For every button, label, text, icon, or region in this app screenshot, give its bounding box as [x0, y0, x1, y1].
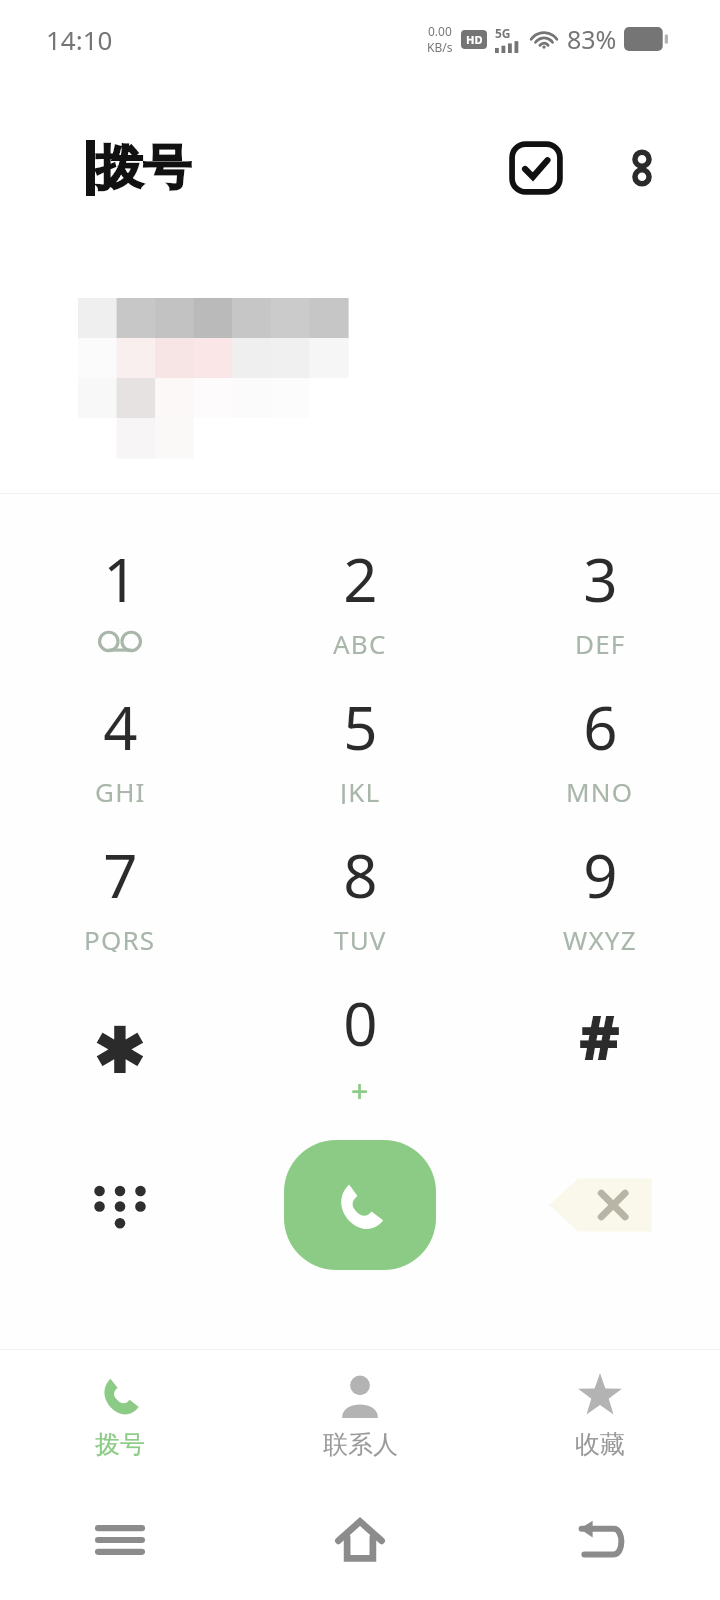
button[interactable]: Delete	[480, 1120, 720, 1290]
staticText: ABC	[333, 626, 387, 656]
staticText: 拨号	[95, 1429, 145, 1460]
staticText: MNO	[566, 774, 634, 804]
button[interactable]: Call	[284, 1140, 436, 1270]
button[interactable]: Keypad	[0, 1120, 240, 1290]
button[interactable]: 3	[480, 516, 720, 664]
staticText: TUV	[334, 922, 387, 952]
staticText: 5G	[495, 25, 511, 41]
button[interactable]: #	[480, 960, 720, 1108]
staticText: 5	[343, 686, 378, 768]
staticText: 1	[103, 538, 138, 620]
button[interactable]: 5	[240, 664, 480, 812]
button[interactable]: 拨号	[0, 1350, 240, 1480]
staticText: WXYZ	[563, 922, 637, 952]
staticText: 联系人	[323, 1429, 398, 1460]
staticText: 7	[103, 834, 138, 916]
button[interactable]: 2	[240, 516, 480, 664]
staticText: 0.00	[428, 23, 452, 39]
staticText: 0	[343, 982, 378, 1064]
staticText: 83%	[567, 22, 617, 56]
button[interactable]: More options	[606, 132, 678, 204]
button[interactable]: 7	[0, 812, 240, 960]
staticText: #	[579, 994, 621, 1078]
button[interactable]: Recents	[0, 1480, 240, 1600]
staticText: 收藏	[575, 1429, 625, 1460]
staticText: HD	[466, 32, 483, 47]
staticText: 14:10	[46, 22, 113, 57]
button[interactable]: 4	[0, 664, 240, 812]
staticText: PQRS	[84, 922, 156, 952]
staticText: 拨号	[95, 138, 191, 198]
staticText: DEF	[575, 626, 626, 656]
staticText: 2	[343, 538, 378, 620]
staticText: JKL	[340, 774, 381, 804]
button[interactable]: 收藏	[480, 1350, 720, 1480]
staticText: ✱	[94, 1014, 146, 1086]
button[interactable]: 6	[480, 664, 720, 812]
staticText: GHI	[95, 774, 146, 804]
staticText: KB/s	[427, 39, 453, 55]
button[interactable]: Select	[500, 132, 572, 204]
button[interactable]: Back	[480, 1480, 720, 1600]
button[interactable]: Home	[240, 1480, 480, 1600]
button[interactable]: 1	[0, 516, 240, 664]
staticText: 6	[583, 686, 618, 768]
button[interactable]: 0	[240, 960, 480, 1108]
staticText: 8	[343, 834, 378, 916]
button[interactable]: ✱	[0, 960, 240, 1108]
button[interactable]: 9	[480, 812, 720, 960]
button[interactable]: 联系人	[240, 1350, 480, 1480]
staticText: 9	[583, 834, 618, 916]
button[interactable]: 8	[240, 812, 480, 960]
staticText: 4	[103, 686, 138, 768]
staticText: +	[351, 1070, 369, 1100]
staticText: 3	[583, 538, 618, 620]
